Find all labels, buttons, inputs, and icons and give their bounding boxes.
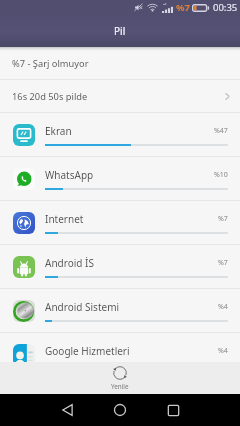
staticText: Internet <box>45 212 218 226</box>
staticText: %47 <box>214 126 228 136</box>
button[interactable]: Android Sistemi <box>0 289 240 332</box>
staticText: Yenile <box>111 382 129 391</box>
button[interactable]: Google Hizmetleri <box>0 333 240 362</box>
button[interactable]: Recents <box>151 394 195 426</box>
staticText: %7 <box>176 1 191 14</box>
button[interactable]: 16s 20d 50s pilde <box>0 80 240 112</box>
staticText: %4 <box>218 302 228 312</box>
button[interactable]: Home <box>98 394 142 426</box>
staticText: 16s 20d 50s pilde <box>12 90 222 103</box>
button[interactable]: Back <box>45 394 89 426</box>
staticText: %7 <box>218 258 228 268</box>
staticText: Pil <box>114 24 126 38</box>
staticText: Ekran <box>45 124 214 138</box>
button[interactable]: %7 - Şarj olmuyor <box>0 47 240 79</box>
button[interactable]: Android İS <box>0 245 240 288</box>
staticText: %4 <box>218 346 228 356</box>
button[interactable]: Ekran <box>0 113 240 156</box>
staticText: WhatsApp <box>45 168 214 182</box>
staticText: %7 <box>218 214 228 224</box>
staticText: %10 <box>214 170 228 180</box>
button[interactable]: Internet <box>0 201 240 244</box>
staticText: 00:35 <box>213 1 238 14</box>
button[interactable]: Yenile <box>93 363 147 393</box>
button[interactable]: WhatsApp <box>0 157 240 200</box>
staticText: Android İS <box>45 256 218 270</box>
staticText: Google Hizmetleri <box>45 344 218 358</box>
staticText: Android Sistemi <box>45 300 218 314</box>
staticText: %7 - Şarj olmuyor <box>12 57 89 70</box>
